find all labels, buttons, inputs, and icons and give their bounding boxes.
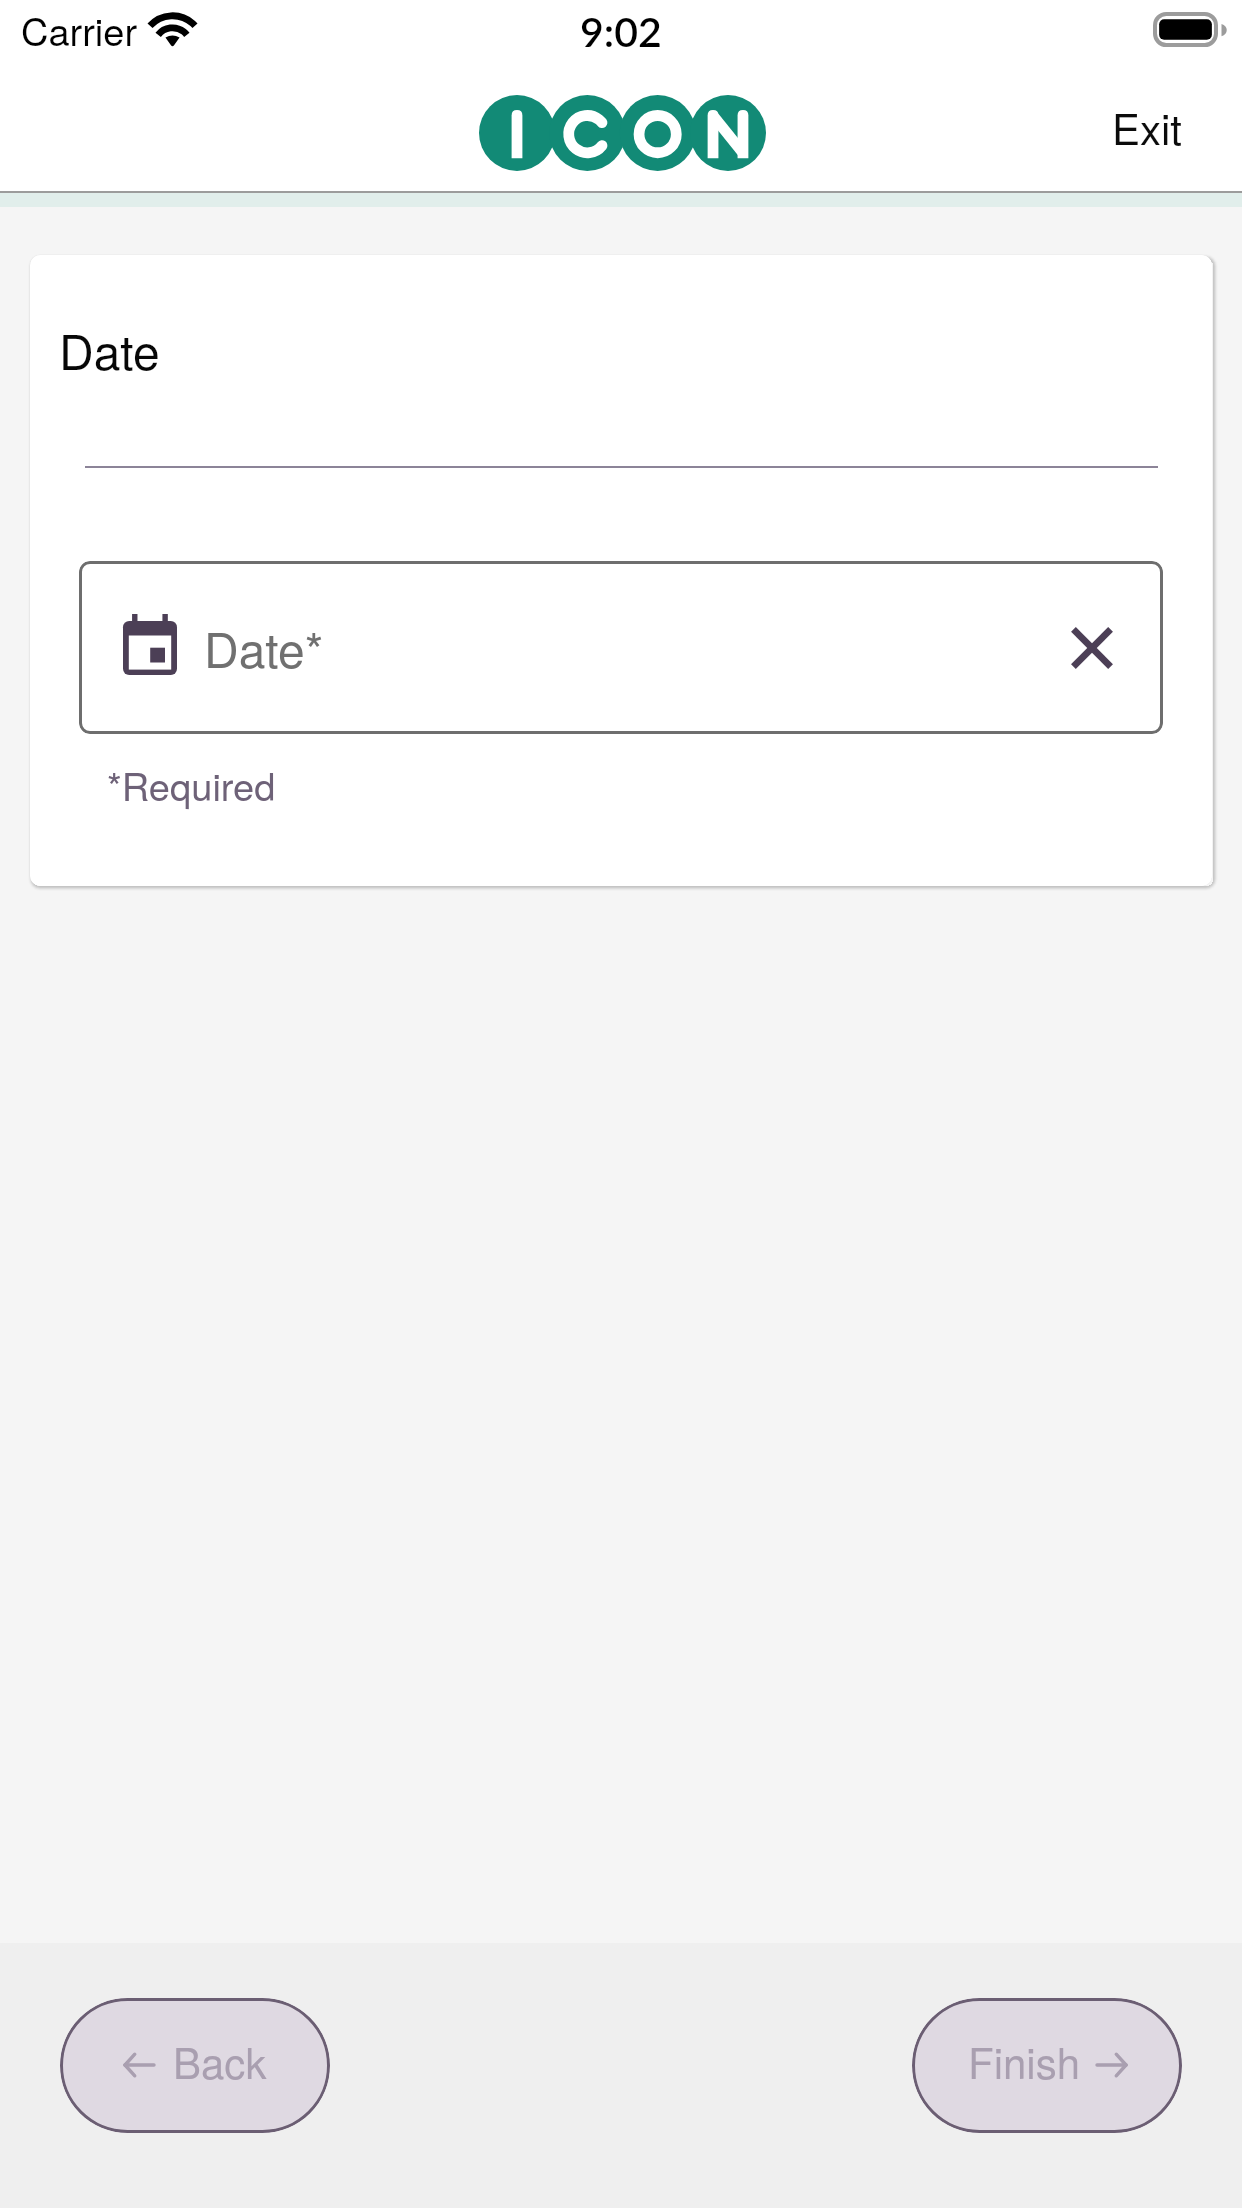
staticText: 9:02 <box>580 7 662 56</box>
staticText: Carrier <box>21 2 138 56</box>
staticText: Finish <box>968 2031 1081 2091</box>
staticText: Date* <box>204 613 324 682</box>
button[interactable]: Date* <box>79 561 1163 734</box>
button[interactable]: Exit <box>1084 79 1211 175</box>
staticText: *Required <box>107 757 276 811</box>
staticText: Back <box>173 2031 267 2091</box>
staticText: Exit <box>1112 97 1183 157</box>
staticText: Date <box>59 315 160 384</box>
button[interactable]: Finish <box>912 1998 1182 2133</box>
button[interactable]: Back <box>60 1998 330 2133</box>
button[interactable]: Clear date <box>1051 607 1132 688</box>
